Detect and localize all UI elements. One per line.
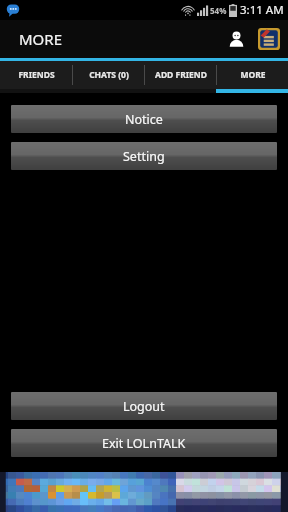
button[interactable]: Items (255, 25, 283, 53)
staticText: Notice (125, 111, 163, 128)
staticText: 54% (210, 5, 227, 16)
button[interactable]: Setting (11, 142, 277, 170)
staticText: Logout (123, 398, 165, 415)
button[interactable]: Notice (11, 105, 277, 133)
staticText: Setting (123, 148, 165, 165)
button[interactable]: FRIENDS (0, 61, 72, 89)
staticText: MORE (240, 69, 266, 81)
button[interactable]: Exit LOLnTALK (11, 429, 277, 457)
staticText: FRIENDS (18, 69, 55, 81)
button[interactable]: Logout (11, 392, 277, 420)
button[interactable]: MORE (217, 61, 288, 89)
button[interactable]: My profile (221, 24, 251, 54)
staticText: MORE (19, 29, 62, 49)
staticText: Exit LOLnTALK (102, 435, 186, 452)
staticText: ADD FRIEND (155, 69, 207, 81)
button[interactable]: CHATS (0) (73, 61, 144, 89)
staticText: 3:11 AM (240, 2, 284, 18)
button[interactable]: ADD FRIEND (145, 61, 216, 89)
staticText: CHATS (0) (89, 69, 129, 81)
